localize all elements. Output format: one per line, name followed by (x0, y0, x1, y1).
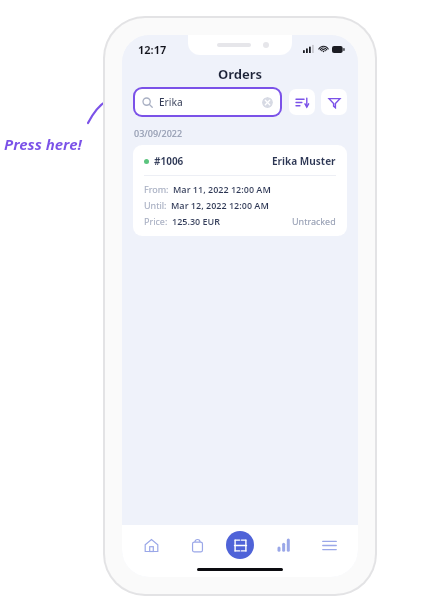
staticText: Erika (159, 95, 183, 109)
button[interactable]: Filter (321, 89, 347, 115)
staticText: Erika Muster (272, 154, 336, 168)
button[interactable]: Menu (312, 528, 346, 562)
staticText: Mar 11, 2022 12:00 AM (173, 183, 271, 195)
staticText: 03/09/2022 (134, 127, 183, 139)
staticText: Until: (144, 199, 167, 211)
button[interactable]: Home (134, 528, 168, 562)
button[interactable]: Erika (135, 89, 280, 115)
staticText: #1006 (154, 154, 184, 168)
button[interactable]: Statistics (266, 528, 300, 562)
staticText: Price: (144, 215, 168, 227)
staticText: Orders (218, 65, 263, 83)
button[interactable]: Orders (180, 528, 214, 562)
button[interactable]: Clear search (262, 97, 273, 108)
staticText: Mar 12, 2022 12:00 AM (171, 199, 269, 211)
button[interactable]: #1006 (133, 145, 347, 236)
button[interactable]: Sort (289, 89, 315, 115)
staticText: From: (144, 183, 169, 195)
staticText: 12:17 (138, 42, 167, 57)
staticText: 125.30 EUR (172, 215, 221, 227)
staticText: Press here! (4, 134, 104, 154)
button[interactable]: Scan (226, 531, 254, 559)
staticText: Untracked (292, 215, 336, 227)
